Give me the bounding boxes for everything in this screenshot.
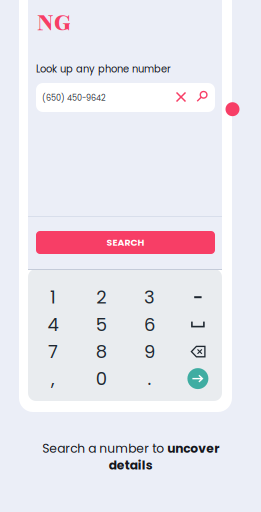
button[interactable]: 9	[127, 338, 173, 365]
button[interactable]: 1	[30, 284, 76, 311]
button[interactable]: Go	[176, 365, 220, 392]
staticText: 2	[96, 285, 106, 310]
button[interactable]: 6	[127, 311, 173, 338]
button[interactable]: 8	[78, 338, 124, 365]
staticText: 9	[144, 339, 155, 364]
staticText: .	[148, 366, 152, 391]
button[interactable]: NG	[37, 12, 97, 34]
button[interactable]: 4	[30, 311, 76, 338]
staticText: 1	[50, 285, 56, 310]
staticText: NG	[37, 8, 71, 38]
button[interactable]: Dash	[176, 284, 220, 311]
button[interactable]: Space	[176, 311, 220, 338]
button[interactable]: 5	[78, 311, 124, 338]
staticText: Search a number to uncover details	[42, 440, 219, 473]
button[interactable]: ,	[30, 365, 76, 392]
staticText: 6	[144, 312, 155, 337]
button[interactable]: 2	[78, 284, 124, 311]
staticText: Look up any phone number	[36, 62, 171, 76]
staticText: 5	[96, 312, 107, 337]
button[interactable]: 7	[30, 338, 76, 365]
button[interactable]: SEARCH	[36, 231, 215, 254]
staticText: 7	[48, 339, 58, 364]
staticText: 4	[47, 312, 58, 337]
button[interactable]: 3	[127, 284, 173, 311]
staticText: SEARCH	[106, 236, 144, 249]
button[interactable]: Search	[191, 86, 213, 108]
staticText: 8	[96, 339, 107, 364]
staticText: (650) 450-9642	[42, 92, 106, 104]
button[interactable]: Delete	[176, 338, 220, 365]
button[interactable]: Clear	[170, 86, 192, 108]
button[interactable]: .	[127, 365, 173, 392]
staticText: 3	[144, 285, 155, 310]
button[interactable]: 0	[78, 365, 124, 392]
staticText: 0	[96, 366, 107, 391]
staticText: ,	[51, 366, 55, 391]
